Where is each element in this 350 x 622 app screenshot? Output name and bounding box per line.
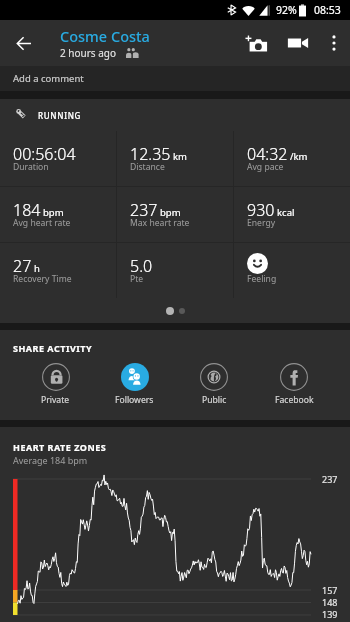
staticText: 148: [322, 596, 338, 608]
staticText: 139: [322, 608, 338, 620]
staticText: SHARE ACTIVITY: [13, 342, 93, 354]
staticText: 930: [247, 199, 275, 221]
button[interactable]: 12.35: [117, 131, 233, 186]
staticText: Duration: [13, 161, 49, 173]
staticText: 237: [130, 199, 158, 221]
staticText: Feeling: [247, 273, 277, 285]
button[interactable]: Add a comment: [0, 66, 350, 91]
staticText: Avg pace: [247, 161, 284, 173]
staticText: 5.0: [130, 255, 153, 277]
staticText: RUNNING: [38, 110, 82, 121]
staticText: Max heart rate: [130, 217, 190, 229]
staticText: km: [173, 150, 187, 163]
button[interactable]: 184: [0, 187, 116, 242]
staticText: 08:53: [314, 3, 341, 17]
staticText: /km: [290, 150, 308, 163]
button[interactable]: More options: [318, 20, 350, 66]
staticText: h: [34, 262, 40, 275]
staticText: Energy: [247, 217, 276, 229]
staticText: Cosme Costa: [60, 26, 150, 46]
staticText: 2 hours ago: [60, 46, 117, 60]
staticText: Recovery Time: [13, 273, 72, 285]
button[interactable]: Back: [0, 20, 47, 66]
button[interactable]: Public: [174, 363, 254, 406]
staticText: 237: [322, 473, 338, 485]
staticText: 157: [322, 584, 338, 596]
staticText: Add a comment: [13, 72, 84, 85]
staticText: bpm: [43, 206, 64, 219]
button[interactable]: 00:56:04: [0, 131, 116, 186]
staticText: 12.35: [130, 143, 171, 165]
button[interactable]: 930: [234, 187, 350, 242]
button[interactable]: 237: [117, 187, 233, 242]
button[interactable]: Facebook: [254, 363, 334, 406]
staticText: Public: [202, 394, 227, 406]
staticText: Private: [41, 394, 70, 406]
button[interactable]: 27: [0, 243, 116, 298]
staticText: Followers: [115, 394, 154, 406]
button[interactable]: Add photo: [234, 20, 278, 66]
button[interactable]: 04:32: [234, 131, 350, 186]
button[interactable]: 5.0: [117, 243, 233, 298]
staticText: kcal: [277, 206, 295, 219]
button[interactable]: Record video: [278, 20, 318, 66]
staticText: Distance: [130, 161, 165, 173]
staticText: HEART RATE ZONES: [13, 441, 107, 453]
button[interactable]: Followers: [95, 363, 174, 406]
staticText: bpm: [160, 206, 181, 219]
staticText: 27: [13, 255, 32, 277]
staticText: Avg heart rate: [13, 217, 71, 229]
staticText: Facebook: [275, 394, 314, 406]
staticText: 184: [13, 199, 41, 221]
button[interactable]: Private: [16, 363, 95, 406]
staticText: Average 184 bpm: [13, 454, 88, 466]
button[interactable]: Feeling: [234, 243, 350, 298]
staticText: 92%: [276, 3, 297, 17]
staticText: 04:32: [247, 143, 288, 165]
staticText: Pte: [130, 273, 144, 285]
staticText: 00:56:04: [13, 143, 76, 165]
